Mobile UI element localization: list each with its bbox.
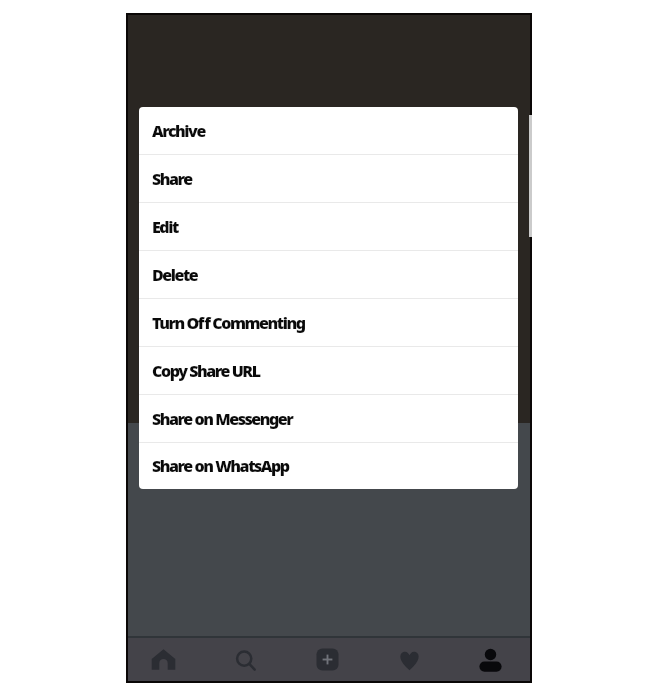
button[interactable]: New post bbox=[307, 638, 347, 681]
staticText: Share on WhatsApp bbox=[152, 455, 289, 477]
staticText: Share bbox=[152, 168, 192, 190]
button[interactable]: Archive bbox=[139, 107, 518, 155]
staticText: Share on Messenger bbox=[152, 408, 293, 430]
staticText: Edit bbox=[152, 216, 178, 238]
button[interactable]: Delete bbox=[139, 251, 518, 299]
button[interactable]: Activity bbox=[389, 638, 429, 681]
button[interactable]: Turn Off Commenting bbox=[139, 299, 518, 347]
staticText: Copy Share URL bbox=[152, 360, 260, 382]
button[interactable]: Share on Messenger bbox=[139, 395, 518, 443]
button[interactable]: Search bbox=[225, 638, 265, 681]
button[interactable]: Edit bbox=[139, 203, 518, 251]
staticText: Archive bbox=[152, 120, 205, 142]
button[interactable]: Copy Share URL bbox=[139, 347, 518, 395]
button[interactable]: Home bbox=[143, 638, 183, 681]
staticText: Delete bbox=[152, 264, 198, 286]
button[interactable]: Profile bbox=[470, 638, 510, 681]
staticText: Turn Off Commenting bbox=[152, 312, 305, 334]
button[interactable]: Share on WhatsApp bbox=[139, 443, 518, 489]
button[interactable]: Share bbox=[139, 155, 518, 203]
